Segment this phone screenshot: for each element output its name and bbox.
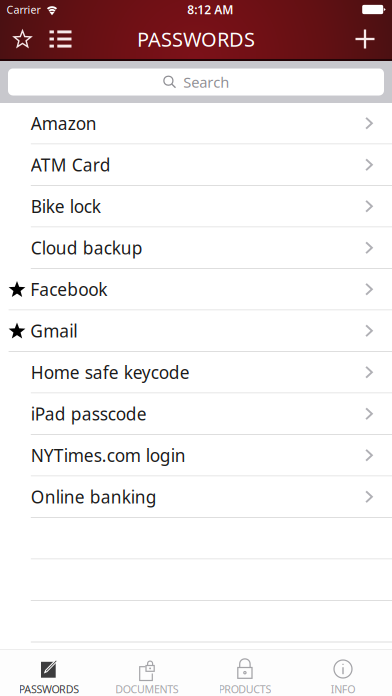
button[interactable]: Favorites: [3, 19, 41, 59]
button[interactable]: iPad passcode: [0, 393, 392, 434]
staticText: PASSWORDS: [19, 682, 79, 696]
staticText: ATM Card: [31, 153, 111, 176]
button[interactable]: Cloud backup: [0, 227, 392, 268]
button[interactable]: NYTimes.com login: [0, 435, 392, 475]
staticText: PRODUCTS: [219, 682, 271, 696]
staticText: Facebook: [30, 278, 107, 301]
staticText: PASSWORDS: [137, 26, 255, 52]
button[interactable]: Facebook: [0, 269, 392, 309]
staticText: DOCUMENTS: [115, 682, 179, 696]
button[interactable]: INFO: [294, 649, 392, 696]
staticText: iPad passcode: [31, 402, 147, 425]
button[interactable]: Amazon: [0, 103, 392, 143]
staticText: Search: [183, 72, 229, 92]
button[interactable]: Home safe keycode: [0, 352, 392, 392]
staticText: Bike lock: [31, 195, 101, 218]
button[interactable]: Online banking: [0, 476, 392, 517]
staticText: Amazon: [31, 112, 97, 135]
staticText: Cloud backup: [31, 236, 143, 259]
staticText: Carrier: [6, 2, 40, 17]
staticText: Gmail: [30, 319, 77, 342]
staticText: Online banking: [31, 485, 157, 508]
staticText: INFO: [331, 682, 355, 696]
button[interactable]: PASSWORDS: [0, 649, 98, 696]
button[interactable]: Bike lock: [0, 186, 392, 226]
staticText: 8:12 AM: [187, 1, 233, 17]
button[interactable]: Search: [0, 68, 392, 95]
button[interactable]: ATM Card: [0, 144, 392, 185]
button[interactable]: Categories: [41, 19, 79, 59]
button[interactable]: DOCUMENTS: [98, 649, 196, 696]
staticText: NYTimes.com login: [31, 444, 186, 467]
button[interactable]: Gmail: [0, 310, 392, 351]
staticText: Home safe keycode: [31, 361, 190, 384]
button[interactable]: PRODUCTS: [196, 649, 294, 696]
button[interactable]: Add password: [342, 19, 388, 59]
